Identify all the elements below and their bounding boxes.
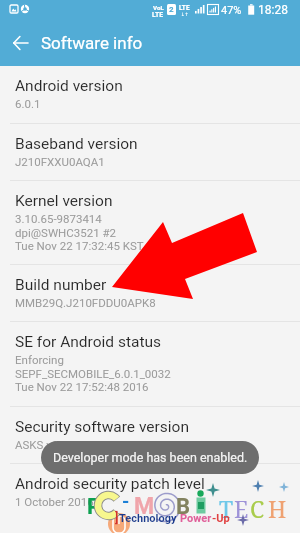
staticText: P	[87, 494, 102, 520]
staticText: 6.0.1	[15, 97, 41, 110]
staticText: Enforcing	[15, 353, 64, 366]
staticText: Tue Nov 22 17:52:48 2016	[15, 380, 149, 393]
staticText: Technology	[119, 512, 180, 525]
staticText: Android security patch level	[15, 475, 205, 493]
staticText: Developer mode has been enabled.	[53, 450, 248, 465]
staticText: Software info	[41, 33, 143, 53]
staticText: ↓↑	[181, 12, 189, 17]
button[interactable]: Back	[6, 29, 34, 57]
staticText: 18:28	[258, 3, 288, 17]
staticText: 2	[169, 5, 174, 14]
staticText: Security software version	[15, 418, 189, 436]
staticText: T	[219, 493, 234, 524]
staticText: E	[234, 493, 249, 524]
staticText: -Up	[212, 512, 230, 525]
staticText: Android version	[15, 77, 123, 95]
button[interactable]: SE for Android status	[0, 322, 300, 406]
staticText: H	[268, 493, 287, 524]
staticText: LTE	[179, 4, 190, 12]
staticText: 47%	[221, 4, 242, 17]
button[interactable]: Android version	[0, 66, 300, 123]
staticText: Power	[180, 512, 212, 525]
staticText: C	[250, 493, 265, 524]
staticText: Tue Nov 22 17:32:45 KST	[15, 239, 144, 252]
staticText: Build number	[15, 276, 107, 294]
staticText: ]	[115, 511, 119, 525]
staticText: M	[134, 493, 155, 520]
button[interactable]: Baseband version	[0, 124, 300, 180]
staticText: MMB29Q.J210FDDU0APK8	[15, 296, 156, 309]
staticText: -	[122, 490, 130, 512]
staticText: 3.10.65-9873414	[15, 212, 102, 225]
staticText: LTE	[152, 11, 164, 19]
staticText: ASKS v1.2_161011	[15, 438, 112, 451]
button[interactable]: Kernel version	[0, 181, 300, 264]
staticText: Baseband version	[15, 135, 138, 153]
button[interactable]: Build number	[0, 265, 300, 321]
staticText: dpi@SWHC3521 #2	[15, 226, 117, 239]
button[interactable]: Security software version	[0, 407, 300, 463]
staticText: J210FXXU0AQA1	[15, 155, 105, 168]
staticText: B	[176, 494, 191, 520]
staticText: 1 October 2016	[15, 495, 94, 508]
staticText: VoL	[153, 4, 164, 11]
button[interactable]: Android security patch level	[0, 464, 300, 520]
staticText: SE for Android status	[15, 333, 162, 351]
staticText: SEPF_SECMOBILE_6.0.1_0032	[15, 367, 171, 380]
staticText: Kernel version	[15, 192, 113, 210]
